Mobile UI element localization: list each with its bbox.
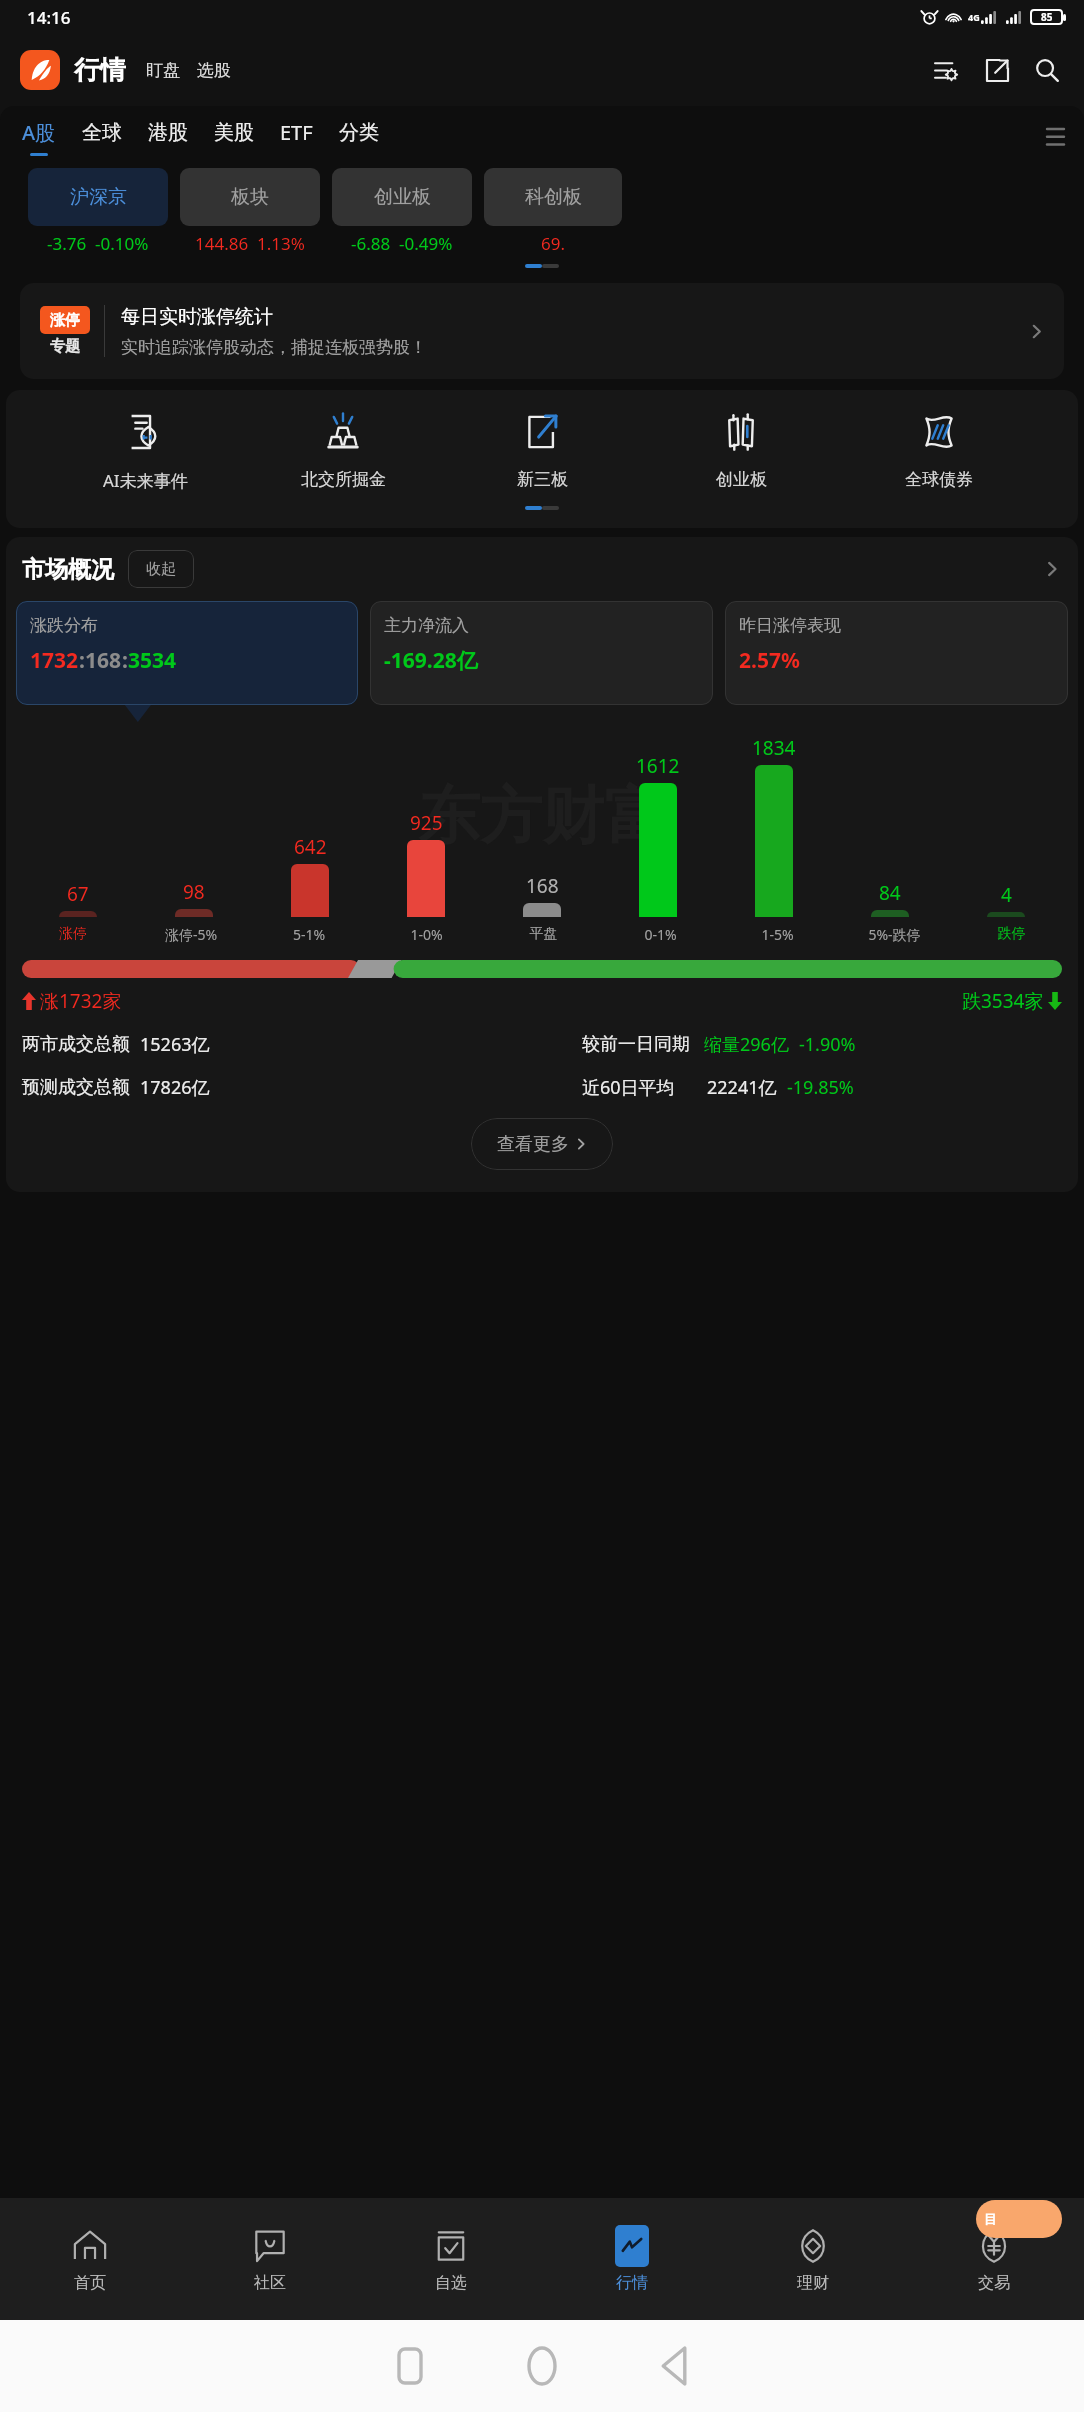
staticText: 沪深京 xyxy=(70,185,127,209)
staticText: 收起 xyxy=(146,560,176,579)
staticText: ETF xyxy=(280,119,313,146)
staticText: 168 xyxy=(85,646,122,675)
button[interactable]: Home xyxy=(511,2335,573,2397)
staticText: : xyxy=(79,646,85,675)
button[interactable]: 新三板 xyxy=(482,408,602,490)
button[interactable]: 社区 xyxy=(180,2198,360,2320)
staticText: -169.28亿 xyxy=(384,646,478,675)
staticText: 北交所掘金 xyxy=(301,469,386,490)
button[interactable]: App logo xyxy=(20,50,60,90)
button[interactable]: 涨跌分布 xyxy=(16,601,358,705)
staticText: 两市成交总额 xyxy=(22,1033,130,1056)
staticText: 涨停 xyxy=(50,311,80,330)
button[interactable]: More tabs xyxy=(1040,122,1070,152)
button[interactable]: 北交所掘金 xyxy=(283,408,403,490)
staticText: 预测成交总额 xyxy=(22,1076,130,1099)
button[interactable]: Back xyxy=(643,2335,705,2397)
staticText: 5%-跌停 xyxy=(836,925,953,944)
staticText: 理财 xyxy=(797,2273,829,2293)
staticText: 69. xyxy=(541,232,566,255)
button[interactable]: AI未来事件 xyxy=(85,408,205,492)
button[interactable]: 主力净流入 xyxy=(370,601,713,705)
staticText: 平盘 xyxy=(485,925,602,943)
button[interactable]: 科创板 xyxy=(484,168,622,226)
staticText: 168 xyxy=(526,873,559,899)
staticText: 科创板 xyxy=(525,185,582,209)
staticText: 4 xyxy=(1001,882,1012,908)
staticText: 85 xyxy=(1041,10,1053,24)
button[interactable]: 港股 xyxy=(148,106,188,168)
button[interactable]: 收起 xyxy=(128,550,194,588)
button[interactable]: 查看更多 xyxy=(471,1118,613,1170)
button[interactable]: 交易 xyxy=(903,2198,1084,2320)
button[interactable]: 首页 xyxy=(0,2198,180,2320)
button[interactable]: 全球 xyxy=(82,106,122,168)
staticText: 交易 xyxy=(978,2273,1010,2293)
button[interactable]: 涨停 xyxy=(20,283,1064,379)
staticText: 925 xyxy=(410,810,443,836)
button[interactable]: 昨日涨停表现 xyxy=(725,601,1068,705)
button[interactable]: 行情 xyxy=(541,2198,722,2320)
button[interactable]: 自选 xyxy=(360,2198,541,2320)
staticText: 较前一日同期 xyxy=(582,1033,690,1056)
button[interactable]: Settings list xyxy=(928,53,962,87)
staticText: 涨停-5% xyxy=(132,925,250,944)
staticText: 每日实时涨停统计 xyxy=(121,305,273,329)
button[interactable]: 理财 xyxy=(722,2198,903,2320)
staticText: 5-1% xyxy=(250,925,368,944)
button[interactable]: 创业板 xyxy=(332,168,472,226)
staticText: 1-0% xyxy=(368,925,485,944)
button[interactable]: Search xyxy=(1030,53,1064,87)
staticText: 涨跌分布 xyxy=(30,615,98,636)
button[interactable]: 美股 xyxy=(214,106,254,168)
staticText: 自选 xyxy=(435,2273,467,2293)
button[interactable]: 选股 xyxy=(197,60,231,81)
button[interactable]: 创业板 xyxy=(681,408,801,490)
staticText: 专题 xyxy=(50,337,80,356)
button[interactable]: Promo xyxy=(976,2200,1062,2238)
button[interactable]: ETF xyxy=(280,106,313,168)
staticText: 目 xyxy=(984,2211,997,2227)
staticText: 642 xyxy=(294,834,327,860)
staticText: 全球 xyxy=(82,120,122,145)
staticText: 板块 xyxy=(231,185,269,209)
staticText: 缩量296亿 xyxy=(704,1032,789,1057)
staticText: 84 xyxy=(879,880,901,906)
staticText: 实时追踪涨停股动态，捕捉连板强势股！ xyxy=(121,337,427,358)
staticText: 港股 xyxy=(148,120,188,145)
button[interactable]: 市场概况 xyxy=(6,537,1078,601)
staticText: -1.90% xyxy=(799,1032,856,1057)
button[interactable]: 全球债券 xyxy=(879,408,999,490)
button[interactable]: 板块 xyxy=(180,168,320,226)
button[interactable]: Share xyxy=(980,53,1014,87)
staticText: 1732 xyxy=(30,646,79,675)
button[interactable]: A股 xyxy=(22,106,56,168)
staticText: 分类 xyxy=(339,120,379,145)
staticText: 144.86 1.13% xyxy=(195,232,305,255)
button[interactable]: 分类 xyxy=(339,106,379,168)
staticText: 昨日涨停表现 xyxy=(739,615,841,636)
staticText: 22241亿 xyxy=(707,1075,777,1100)
staticText: 1834 xyxy=(752,735,796,761)
staticText: 4G xyxy=(968,11,980,23)
button[interactable]: Recents xyxy=(379,2335,441,2397)
staticText: 美股 xyxy=(214,120,254,145)
staticText: 全球债券 xyxy=(905,469,973,490)
staticText: 社区 xyxy=(254,2273,286,2293)
staticText: 14:16 xyxy=(27,6,71,29)
staticText: 跌停 xyxy=(953,925,1070,943)
button[interactable]: 盯盘 xyxy=(146,60,180,81)
staticText: AI未来事件 xyxy=(103,469,188,492)
button[interactable]: 沪深京 xyxy=(28,168,168,226)
button[interactable]: 行情 xyxy=(74,54,126,87)
staticText: 创业板 xyxy=(374,185,431,209)
staticText: 0-1% xyxy=(602,925,719,944)
staticText: 15263亿 xyxy=(140,1032,210,1057)
staticText: 2.57% xyxy=(739,646,800,675)
staticText: 行情 xyxy=(616,2273,648,2293)
staticText: 查看更多 xyxy=(497,1133,569,1156)
staticText: 1612 xyxy=(636,753,680,779)
staticText: -6.88 -0.49% xyxy=(351,232,453,255)
staticText: 东方财富 xyxy=(418,777,666,855)
staticText: 98 xyxy=(183,879,205,905)
